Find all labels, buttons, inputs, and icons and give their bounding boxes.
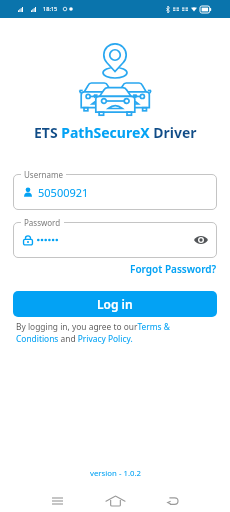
staticText: Password	[24, 217, 61, 228]
button[interactable]: Forgot Password?	[128, 260, 219, 278]
button[interactable]: Home	[0, 490, 230, 512]
button[interactable]: Show password	[193, 232, 209, 248]
button[interactable]: Show password	[13, 222, 217, 258]
button[interactable]: Log in	[13, 291, 217, 317]
button[interactable]: Menu	[0, 490, 115, 512]
staticText: Forgot Password?	[130, 262, 217, 276]
staticText: Log in	[97, 296, 133, 312]
staticText: Username	[24, 169, 63, 180]
staticText: 18:15	[43, 5, 58, 13]
staticText: version - 1.0.2	[90, 468, 141, 479]
staticText: By logging in, you agree to ourTerms & C…	[16, 321, 178, 345]
staticText: 50500921	[38, 185, 89, 200]
button[interactable]: Back	[115, 490, 230, 512]
button[interactable]: 50500921	[13, 174, 217, 210]
staticText: ETS PathSecureX Driver	[34, 123, 197, 142]
